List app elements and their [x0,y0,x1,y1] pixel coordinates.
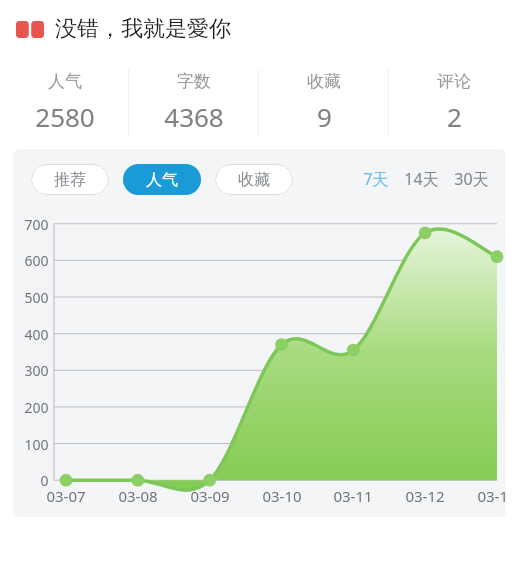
staticText: 7天 [363,168,389,190]
staticText: 4368 [164,99,224,134]
staticText: 人气 [48,71,82,92]
staticText: 2580 [35,99,95,134]
staticText: 03-09 [190,486,230,506]
staticText: 400 [24,325,49,344]
staticText: 03-13 [477,486,506,506]
button[interactable]: Book [0,0,519,58]
staticText: 300 [24,361,49,380]
button[interactable]: 30天 [452,163,491,195]
button[interactable]: 14天 [402,163,441,195]
button[interactable]: 收藏 [259,58,389,146]
staticText: 9 [317,99,332,134]
staticText: 收藏 [307,71,341,92]
staticText: 200 [24,398,49,417]
button[interactable]: 评论 [389,58,519,146]
staticText: 收藏 [238,170,270,190]
button[interactable]: 人气 [0,58,129,146]
staticText: 推荐 [54,170,86,190]
button[interactable]: 7天 [361,163,391,195]
staticText: 500 [24,288,49,307]
staticText: 600 [24,251,49,270]
staticText: 字数 [177,71,211,92]
staticText: 03-11 [333,486,373,506]
staticText: 人气 [146,170,178,190]
staticText: 30天 [454,168,489,190]
staticText: 评论 [437,71,471,92]
staticText: 0 [40,471,49,490]
button[interactable]: 人气 [123,164,201,195]
staticText: 100 [24,435,49,454]
button[interactable]: 字数 [129,58,259,146]
staticText: 03-10 [262,486,302,506]
button[interactable]: 推荐 [31,164,109,195]
staticText: 03-07 [46,486,86,506]
staticText: 03-12 [405,486,445,506]
staticText: 14天 [404,168,439,190]
other: Book [16,21,44,38]
staticText: 2 [447,99,462,134]
staticText: 没错，我就是愛你 [55,15,231,43]
staticText: 700 [24,215,49,234]
button[interactable]: 收藏 [215,164,293,195]
staticText: 03-08 [118,486,158,506]
